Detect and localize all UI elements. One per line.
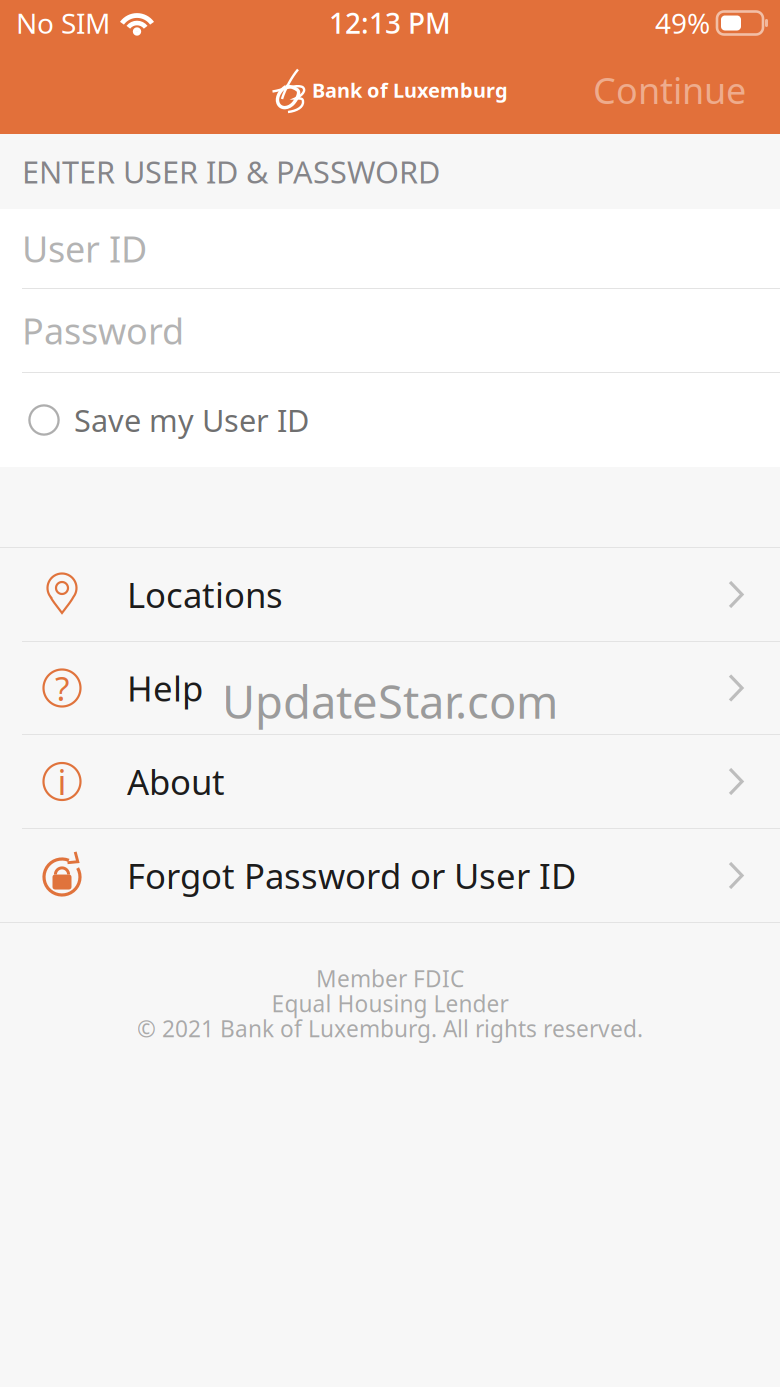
staticText: Equal Housing Lender [271,988,508,1018]
staticText: © 2021 Bank of Luxemburg. All rights res… [137,1013,643,1043]
button[interactable]: i [0,735,780,828]
staticText: Forgot Password or User ID [127,852,576,898]
button[interactable]: ? [0,642,780,734]
staticText: Continue [593,66,746,114]
staticText: UpdateStar.com [222,671,558,731]
button[interactable]: Continue [576,54,763,126]
button[interactable]: Save my User ID [0,373,780,467]
staticText: 49% [655,4,710,42]
staticText: Help [127,665,203,711]
staticText: No SIM [16,4,110,42]
staticText: Bank of Luxemburg [312,77,508,103]
staticText: Password [22,307,184,354]
staticText: About [127,758,225,804]
button[interactable]: Forgot Password or User ID [0,829,780,922]
staticText: ? [55,666,69,710]
button[interactable]: Locations [0,548,780,641]
staticText: Save my User ID [74,400,309,440]
staticText: User ID [22,225,147,272]
staticText: Member FDIC [316,963,464,993]
staticText: 12:13 PM [329,4,451,42]
staticText: Locations [127,571,283,617]
staticText: ENTER USER ID & PASSWORD [22,151,440,192]
staticText: i [57,758,66,804]
